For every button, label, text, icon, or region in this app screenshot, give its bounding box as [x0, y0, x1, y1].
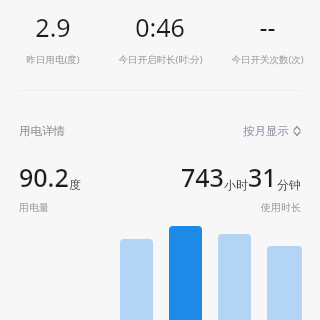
- staticText: 按月显示: [243, 124, 289, 138]
- staticText: 昨日用电(度): [26, 53, 80, 66]
- staticText: 分钟: [277, 177, 301, 192]
- staticText: 度: [69, 177, 81, 192]
- button[interactable]: 90.2: [19, 160, 81, 214]
- other: Change display period: [293, 126, 301, 136]
- button[interactable]: --: [215, 10, 320, 66]
- staticText: 用电量: [19, 201, 49, 214]
- staticText: 今日开启时长(时:分): [118, 53, 203, 66]
- button[interactable]: [169, 226, 202, 320]
- button[interactable]: 743: [0, 160, 301, 214]
- button[interactable]: 2.9: [0, 10, 105, 66]
- staticText: 2.9: [35, 10, 71, 44]
- staticText: 0:46: [135, 10, 185, 44]
- staticText: --: [259, 10, 276, 44]
- button[interactable]: 0:46: [105, 10, 215, 66]
- staticText: 90.2: [19, 160, 69, 194]
- staticText: 使用时长: [261, 201, 301, 214]
- staticText: 今日开关次数(次): [231, 53, 304, 66]
- staticText: 743: [181, 160, 224, 194]
- button[interactable]: 用电详情: [19, 124, 65, 138]
- staticText: 小时: [224, 177, 248, 192]
- staticText: 31: [248, 160, 277, 194]
- button[interactable]: 按月显示: [243, 124, 301, 138]
